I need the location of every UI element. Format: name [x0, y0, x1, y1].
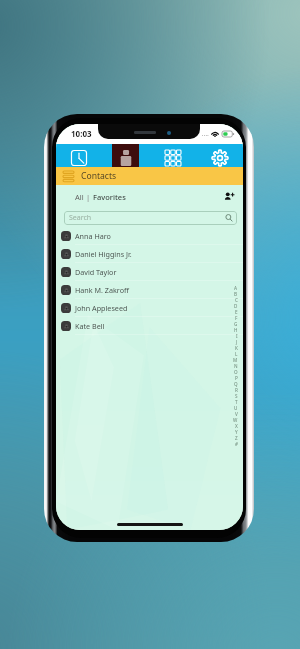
staticText: U [234, 405, 238, 411]
button[interactable]: Contacts [102, 144, 149, 167]
staticText: # [235, 441, 238, 447]
staticText: J [236, 339, 238, 345]
staticText: Y [235, 429, 238, 435]
button[interactable]: Daniel Higgins Jr. [56, 245, 243, 263]
staticText: N [234, 363, 238, 369]
staticText: O [234, 369, 238, 375]
button[interactable]: David Taylor [56, 263, 243, 281]
button[interactable]: All [75, 192, 84, 202]
staticText: Q [234, 381, 238, 387]
staticText: Kate Bell [75, 321, 105, 331]
staticText: V [235, 411, 238, 417]
staticText: Hank M. Zakroff [75, 285, 129, 295]
staticText: R [235, 387, 238, 393]
staticText: Daniel Higgins Jr. [75, 249, 132, 259]
staticText: C [235, 297, 238, 303]
button[interactable]: Hank M. Zakroff [56, 281, 243, 299]
button[interactable]: Keypad [149, 144, 196, 167]
staticText: John Appleseed [75, 303, 128, 313]
staticText: Z [235, 435, 238, 441]
staticText: | [84, 192, 93, 202]
staticText: I [236, 333, 238, 339]
staticText: S [235, 393, 238, 399]
button[interactable]: Add contact [223, 190, 236, 203]
staticText: E [235, 309, 238, 315]
staticText: Search [69, 213, 92, 223]
staticText: T [235, 399, 238, 405]
staticText: M [233, 357, 238, 363]
staticText: W [233, 417, 238, 423]
button[interactable]: Anna Haro [56, 227, 243, 245]
staticText: K [235, 345, 238, 351]
staticText: X [235, 423, 238, 429]
button[interactable]: Settings [196, 144, 243, 167]
staticText: A [234, 285, 238, 291]
button[interactable]: Kate Bell [56, 317, 243, 335]
staticText: F [235, 315, 238, 321]
staticText: David Taylor [75, 267, 117, 277]
staticText: L [235, 351, 238, 357]
staticText: G [234, 321, 238, 327]
button[interactable]: John Appleseed [56, 299, 243, 317]
staticText: 10:03 [71, 128, 92, 139]
button[interactable]: Menu [62, 170, 75, 182]
staticText: H [234, 327, 238, 333]
button[interactable]: Favorites [93, 192, 126, 202]
staticText: B [234, 291, 238, 297]
staticText: Contacts [81, 170, 117, 182]
staticText: Anna Haro [75, 231, 111, 241]
button[interactable]: Search [64, 211, 237, 225]
staticText: P [235, 375, 238, 381]
button[interactable]: Recents [56, 144, 102, 167]
staticText: D [234, 303, 238, 309]
